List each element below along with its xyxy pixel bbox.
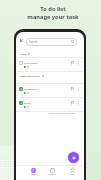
button[interactable]: Mine [66,168,78,176]
button[interactable] [68,152,79,163]
button[interactable]: Shopping list [16,84,84,98]
staticText: Completed Today [20,74,41,77]
button[interactable]: Today [20,52,30,55]
staticText: Search [29,40,38,44]
button[interactable]: Completed Today [20,74,44,77]
staticText: Shopping list [24,87,39,90]
staticText: Tasks [31,173,36,176]
button[interactable]: Tasks [27,168,39,176]
staticText: Movie [24,101,31,104]
button[interactable] [78,87,80,92]
button[interactable]: Drink water [16,58,84,72]
staticText: Drink water [24,61,38,64]
staticText: To do list [40,5,66,13]
button[interactable]: Check all completed tasks [49,112,75,115]
button[interactable]: Calendar [46,168,58,176]
staticText: K [20,38,23,44]
staticText: Today [20,52,27,55]
staticText: Calendar [48,173,56,176]
button[interactable]: Search [26,38,77,46]
button[interactable] [78,61,80,66]
staticText: Mine [70,173,75,176]
button[interactable] [78,101,80,106]
button[interactable]: Movie [16,98,84,112]
staticText: manage your task [27,13,79,21]
